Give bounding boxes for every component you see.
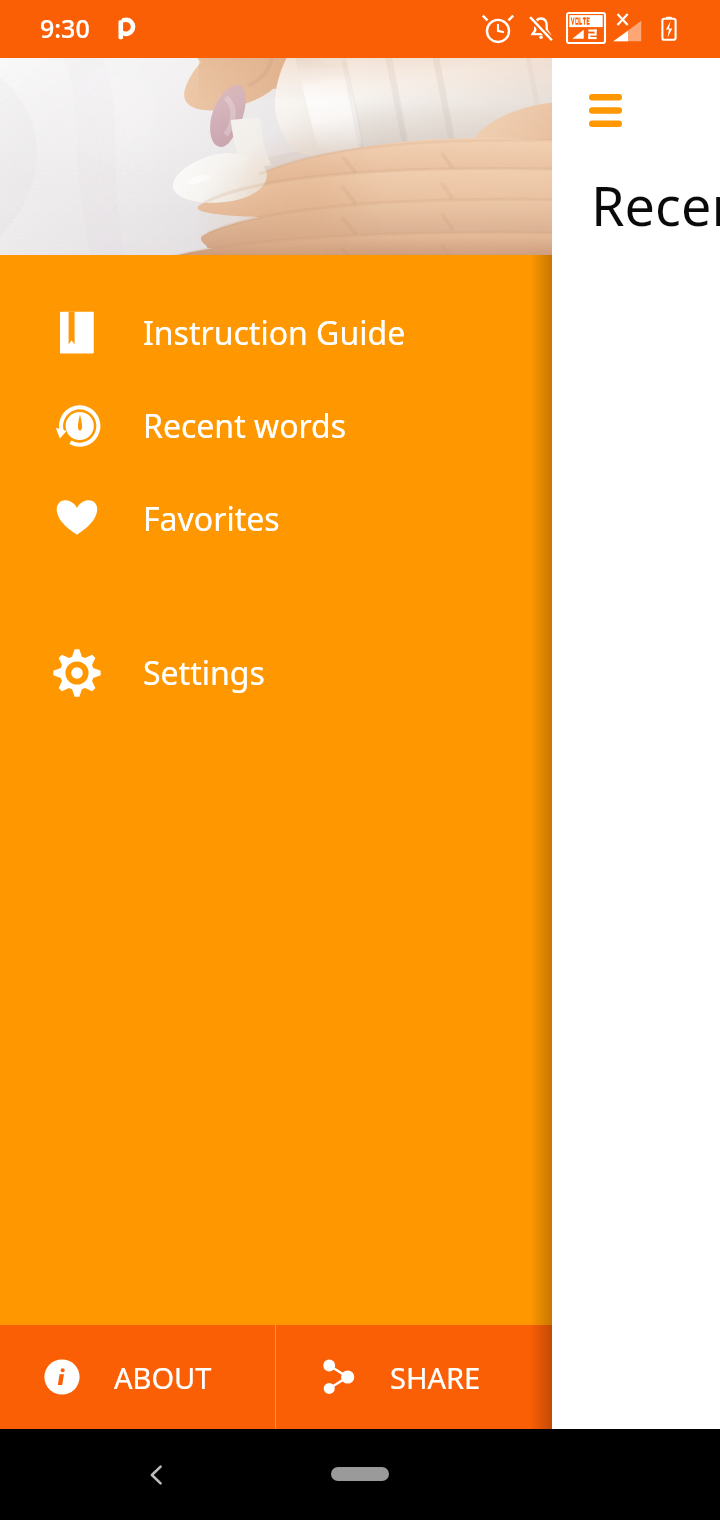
staticText: ABOUT	[114, 1358, 212, 1397]
staticText: Recent words	[143, 404, 347, 448]
button[interactable]: ABOUT	[0, 1325, 275, 1429]
button[interactable]: Settings	[0, 626, 552, 719]
staticText: SHARE	[390, 1358, 481, 1397]
button[interactable]: Back	[127, 1445, 187, 1505]
staticText: Settings	[143, 651, 265, 695]
button[interactable]: Instruction Guide	[0, 286, 552, 379]
staticText: 9:30	[40, 11, 90, 45]
staticText: Instruction Guide	[143, 311, 406, 355]
staticText: Favorites	[143, 497, 280, 541]
button[interactable]: Recent words	[0, 379, 552, 472]
button[interactable]: Home	[331, 1467, 389, 1481]
button[interactable]: Favorites	[0, 472, 552, 565]
button[interactable]: SHARE	[276, 1325, 552, 1429]
button[interactable]: Open navigation drawer	[567, 72, 643, 148]
staticText: Recent words	[591, 168, 720, 242]
